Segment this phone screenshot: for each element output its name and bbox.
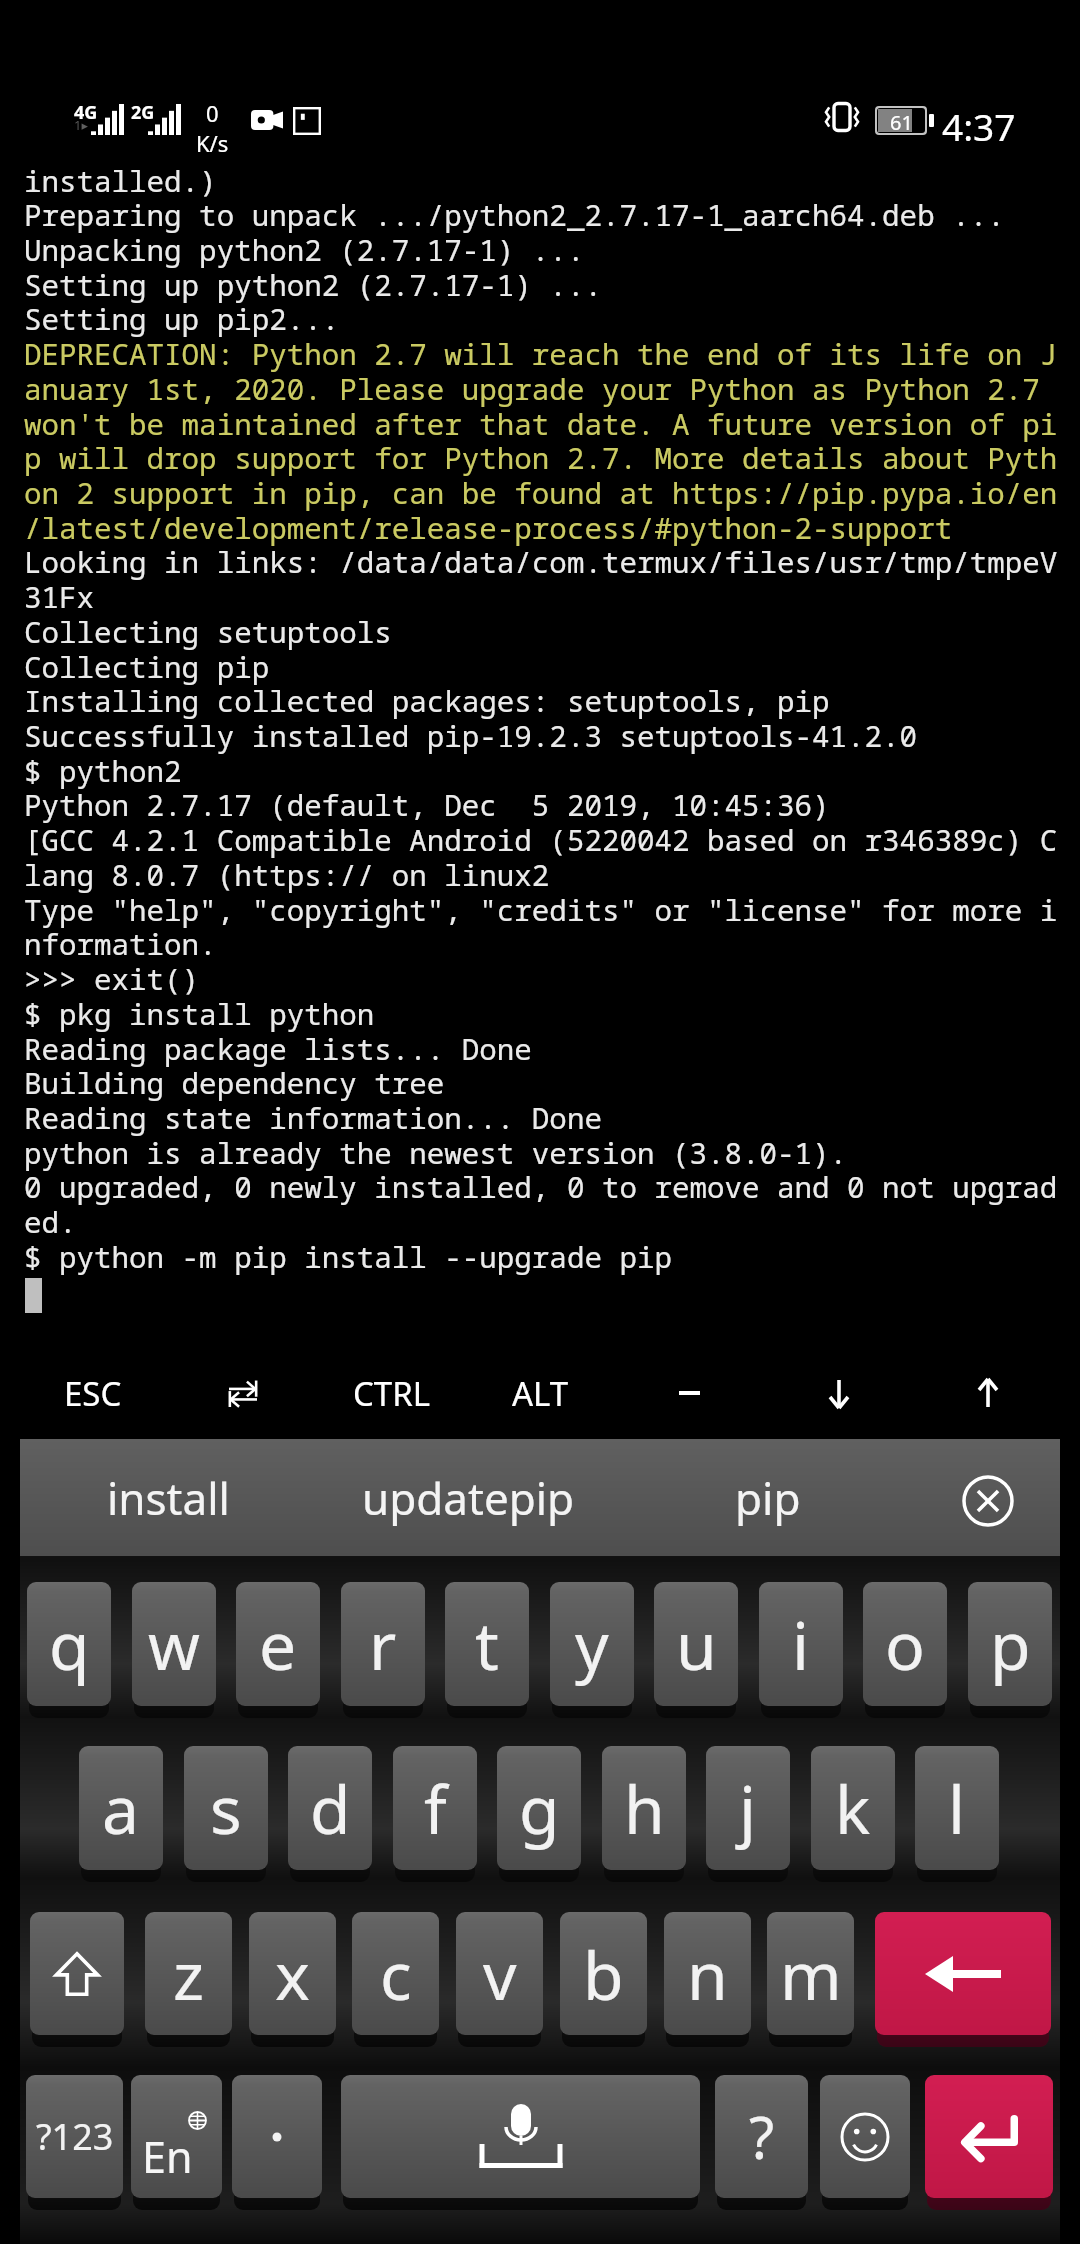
button[interactable]: c [352,1912,439,2035]
staticText: Collecting pip [24,647,270,687]
button[interactable]: u [654,1582,738,1706]
staticText: Preparing to unpack .../python2_2.7.17-1… [24,195,1005,235]
staticText: updatepip [362,1468,575,1528]
staticText: $ python2 [24,751,182,791]
other: Up [975,1379,1001,1408]
staticText: p [990,1599,1031,1689]
staticText: p will drop support for Python 2.7. More… [24,438,1058,478]
button[interactable]: Minus [615,1353,764,1433]
button[interactable]: w [132,1582,216,1706]
staticText: Unpacking python2 (2.7.17-1) ... [24,230,585,270]
staticText: En [142,2127,193,2186]
button[interactable]: p [968,1582,1052,1706]
button[interactable]: q [27,1582,111,1706]
staticText: K/s [196,128,229,158]
staticText: o [885,1599,925,1689]
staticText: installed.) [24,161,217,201]
staticText: i [792,1599,810,1689]
staticText: ALT [512,1371,569,1416]
staticText: d [310,1763,351,1853]
button[interactable]: Down [764,1353,913,1433]
staticText: v [483,1929,517,2019]
staticText: 0 [206,98,219,128]
staticText: s [210,1763,242,1853]
button[interactable]: Backspace [875,1912,1051,2035]
button[interactable]: Space [341,2075,700,2198]
staticText: lang 8.0.7 (https:// on linux2 [24,855,550,895]
staticText: $ python -m pip install --upgrade pip [24,1237,672,1277]
button[interactable]: Enter [925,2075,1053,2198]
button[interactable]: Terminal output [0,160,1080,1340]
staticText: Collecting setuptools [24,612,392,652]
staticText: z [173,1929,205,2019]
button[interactable]: s [184,1746,268,1870]
button[interactable]: l [915,1746,999,1870]
button[interactable]: updatepip [318,1439,618,1556]
button[interactable]: a [79,1746,163,1870]
button[interactable]: Language [131,2075,222,2198]
button[interactable]: Clear suggestions [923,1442,1053,1559]
button[interactable]: pip [618,1439,918,1556]
staticText: anuary 1st, 2020. Please upgrade your Py… [24,369,1040,409]
button[interactable]: Symbols [26,2075,123,2198]
button[interactable]: t [445,1582,529,1706]
button[interactable]: y [550,1582,634,1706]
button[interactable]: ESC [18,1353,168,1433]
button[interactable]: CTRL [317,1353,466,1433]
staticText: q [49,1599,90,1689]
staticText: pip [735,1468,801,1528]
staticText: u [676,1599,717,1689]
staticText: t [475,1599,499,1689]
staticText: r [369,1599,397,1689]
button[interactable]: e [236,1582,320,1706]
staticText: 0 upgraded, 0 newly installed, 0 to remo… [24,1167,1058,1207]
staticText: l [948,1763,966,1853]
button[interactable]: r [341,1582,425,1706]
button[interactable]: Tab [168,1353,317,1433]
other: Tab [229,1380,257,1407]
button[interactable]: ALT [466,1353,615,1433]
staticText: Python 2.7.17 (default, Dec 5 2019, 10:4… [24,785,830,825]
button[interactable]: Shift [30,1912,124,2035]
button[interactable]: ? [715,2075,808,2198]
button[interactable]: f [393,1746,477,1870]
staticText: Setting up pip2... [24,299,340,339]
button[interactable]: z [145,1912,232,2035]
staticText: Successfully installed pip-19.2.3 setupt… [24,716,918,756]
button[interactable]: h [602,1746,686,1870]
staticText: 2G [131,100,155,125]
staticText: 31Fx [24,577,95,617]
button[interactable]: Period [232,2075,322,2198]
staticText: Type "help", "copyright", "credits" or "… [24,890,1058,930]
button[interactable]: g [497,1746,581,1870]
button[interactable]: v [456,1912,543,2035]
button[interactable]: k [811,1746,895,1870]
staticText: k [835,1763,871,1853]
staticText: DEPRECATION: Python 2.7 will reach the e… [24,334,1058,374]
button[interactable]: i [759,1582,843,1706]
button[interactable]: Up [913,1353,1062,1433]
staticText: Reading package lists... Done [24,1029,532,1069]
staticText: /latest/development/release-process/#pyt… [24,508,953,548]
staticText: Installing collected packages: setuptool… [24,681,830,721]
staticText: [GCC 4.2.1 Compatible Android (5220042 b… [24,820,1058,860]
staticText: ed. [24,1202,77,1242]
staticText: 4:37 [942,101,1016,151]
staticText: $ pkg install python [24,994,375,1034]
button[interactable]: Emoji [820,2075,910,2198]
staticText: ESC [64,1371,122,1416]
button[interactable]: b [560,1912,647,2035]
button[interactable]: x [249,1912,336,2035]
button[interactable]: m [767,1912,854,2035]
staticText: Reading state information... Done [24,1098,602,1138]
button[interactable]: n [664,1912,751,2035]
staticText: w [148,1599,200,1689]
other: Down [826,1379,852,1408]
staticText: Building dependency tree [24,1063,445,1103]
button[interactable]: install [18,1439,318,1556]
button[interactable]: d [288,1746,372,1870]
button[interactable]: j [706,1746,790,1870]
staticText: g [519,1763,560,1853]
button[interactable]: o [863,1582,947,1706]
